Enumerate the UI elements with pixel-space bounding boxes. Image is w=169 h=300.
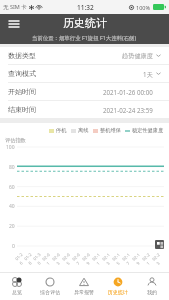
staticText: 0 <box>12 243 15 250</box>
staticText: 总览 <box>12 289 22 295</box>
staticText: 11:32 <box>77 3 94 12</box>
staticText: 02-05 <box>61 251 77 267</box>
staticText: 综合评估 <box>40 289 60 295</box>
staticText: 60 <box>9 184 15 191</box>
button[interactable]: 我的 <box>135 272 169 300</box>
staticText: 02-01 <box>41 251 57 267</box>
staticText: 我的 <box>147 289 157 295</box>
staticText: 整机维保 <box>100 127 121 134</box>
button[interactable]: 历史统计 <box>101 272 135 300</box>
staticText: 100% <box>136 4 151 11</box>
staticText: 02-19 <box>131 251 147 267</box>
staticText: 20 <box>9 223 15 230</box>
button[interactable]: 数据类型 <box>0 47 169 64</box>
staticText: 趋势健康度 <box>122 52 153 60</box>
staticText: 历史统计 <box>63 16 107 30</box>
button[interactable]: 结束时间 <box>0 101 169 118</box>
button[interactable]: 查询模式 <box>0 65 169 82</box>
button[interactable]: 综合评估 <box>33 272 67 300</box>
staticText: 无 SIM 卡 <box>3 3 27 11</box>
staticText: 02-09 <box>81 251 97 267</box>
staticText: 02-21 <box>141 251 157 267</box>
staticText: 开始时间 <box>8 87 36 96</box>
staticText: 异常报警 <box>74 289 94 295</box>
button[interactable]: Fullscreen <box>155 240 164 249</box>
staticText: 01-26 <box>14 252 29 266</box>
staticText: 评估指数 <box>5 137 26 144</box>
button[interactable]: 开始时间 <box>0 83 169 100</box>
staticText: 02-15 <box>111 251 127 267</box>
staticText: 当前位置：烟草行业 F1旋扭 F1大连料(右侧) <box>32 34 137 41</box>
staticText: 历史统计 <box>108 289 128 295</box>
staticText: 1天 <box>143 70 153 78</box>
staticText: 02-23 <box>151 251 167 267</box>
staticText: 查询模式 <box>8 69 36 78</box>
staticText: 稳定性健康度 <box>132 127 164 134</box>
button[interactable]: 异常报警 <box>67 272 101 300</box>
staticText: 停机 <box>56 127 67 134</box>
staticText: 100 <box>6 144 15 151</box>
staticText: 2021-01-26 00:00 <box>103 88 153 96</box>
staticText: 02-13 <box>101 251 117 267</box>
staticText: 02-07 <box>71 251 87 267</box>
button[interactable]: 总览 <box>0 272 33 300</box>
button[interactable]: Menu <box>5 15 23 33</box>
staticText: 01-28 <box>23 252 38 266</box>
staticText: 80 <box>9 164 15 171</box>
staticText: 数据类型 <box>8 51 36 60</box>
staticText: 2021-02-24 23:59 <box>103 106 153 114</box>
staticText: 02-11 <box>91 251 107 267</box>
staticText: 01-30 <box>32 252 47 266</box>
staticText: 离线 <box>78 127 89 134</box>
staticText: 40 <box>9 203 15 210</box>
staticText: 02-17 <box>121 251 137 267</box>
staticText: 结束时间 <box>8 105 36 114</box>
staticText: 02-03 <box>51 251 67 267</box>
